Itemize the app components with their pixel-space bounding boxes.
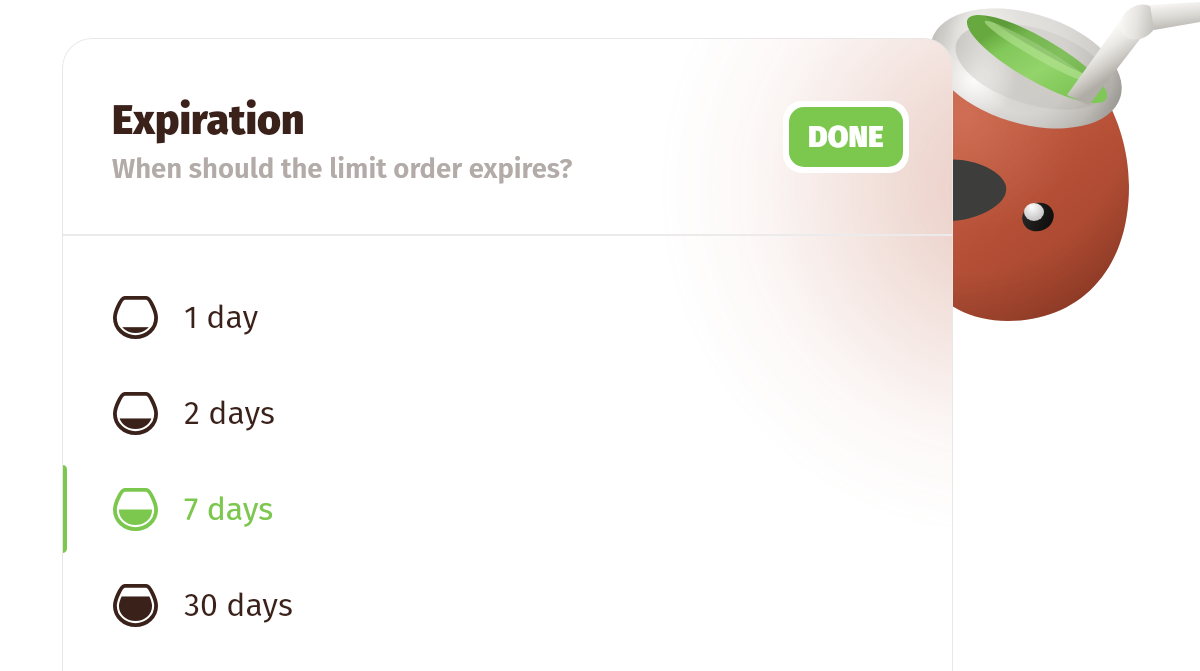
staticText: 7 days xyxy=(184,490,274,528)
staticText: 1 day xyxy=(184,298,259,336)
button[interactable]: 30 days xyxy=(62,557,953,653)
staticText: Expiration xyxy=(112,96,305,145)
staticText: DONE xyxy=(808,119,884,155)
staticText: 2 days xyxy=(184,394,275,432)
button[interactable]: 1 day xyxy=(62,269,953,365)
staticText: When should the limit order expires? xyxy=(112,152,573,185)
button[interactable]: 2 days xyxy=(62,365,953,461)
button[interactable]: DONE xyxy=(789,107,903,167)
staticText: 30 days xyxy=(184,586,293,624)
button[interactable]: 7 days xyxy=(62,461,953,557)
